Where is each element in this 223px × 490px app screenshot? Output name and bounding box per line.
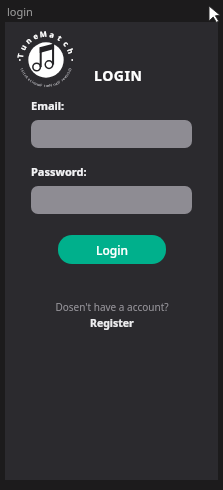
staticText: Login [96,242,128,258]
staticText: Dosen't have a account? [55,300,169,314]
button[interactable]: Register [90,316,134,330]
button[interactable] [31,186,192,214]
staticText: Password: [31,164,87,179]
staticText: Register [90,316,134,330]
button[interactable]: Login [58,235,166,264]
staticText: login [7,4,33,19]
staticText: Email: [31,98,65,113]
button[interactable] [31,120,192,148]
staticText: LOGIN [94,66,143,85]
